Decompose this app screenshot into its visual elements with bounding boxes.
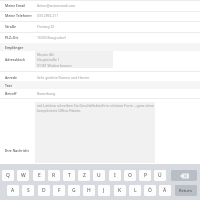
- staticText: Ä: [163, 187, 167, 194]
- button[interactable]: Ü: [154, 170, 166, 181]
- staticText: P: [144, 172, 147, 179]
- button[interactable]: I: [109, 170, 121, 181]
- staticText: E: [38, 172, 41, 179]
- button[interactable]: P: [139, 170, 151, 181]
- staticText: 16333 Bosgrudorf: [37, 35, 66, 40]
- staticText: R: [52, 172, 56, 179]
- staticText: Adressblock: [5, 57, 26, 62]
- button[interactable]: O: [124, 170, 136, 181]
- staticText: L: [134, 187, 137, 194]
- staticText: Meine Telefonnr: [5, 13, 32, 18]
- staticText: I: [114, 172, 116, 179]
- staticText: Anton@antonsmail.com: [37, 3, 76, 8]
- button[interactable]: Ö: [144, 185, 156, 196]
- button[interactable]: A: [7, 185, 19, 196]
- staticText: U: [97, 172, 101, 179]
- staticText: Freiweg 32: [37, 24, 55, 29]
- staticText: K: [118, 187, 122, 194]
- button[interactable]: E: [33, 170, 45, 181]
- button[interactable]: J: [98, 185, 110, 196]
- button[interactable]: S: [22, 185, 34, 196]
- staticText: T: [68, 172, 71, 179]
- button[interactable]: R: [48, 170, 60, 181]
- button[interactable]: [0, 54, 200, 71]
- staticText: H: [87, 187, 91, 194]
- staticText: 91181 Wolsterhausen: [37, 63, 72, 68]
- button[interactable]: Backspace: [171, 170, 197, 181]
- staticText: J: [103, 187, 105, 194]
- staticText: Text: [5, 83, 12, 88]
- staticText: Hauptstraße 1: [37, 57, 60, 62]
- button[interactable]: Z: [78, 170, 90, 181]
- staticText: mit Lattimo schreiben Sie Geschäftsbrief…: [37, 103, 154, 113]
- staticText: Ihre Nachricht: [5, 148, 29, 153]
- button[interactable]: [0, 99, 200, 163]
- staticText: W: [21, 172, 26, 179]
- staticText: Ö: [148, 187, 152, 194]
- staticText: 033 2992 211: [37, 13, 59, 18]
- staticText: S: [27, 187, 30, 194]
- button[interactable]: [0, 71, 200, 82]
- staticText: Muster AG: [37, 52, 54, 57]
- button[interactable]: [0, 1, 200, 11]
- staticText: Anrede: [5, 75, 17, 80]
- staticText: D: [42, 187, 46, 194]
- staticText: Q: [6, 172, 10, 179]
- button[interactable]: U: [93, 170, 105, 181]
- button[interactable]: T: [63, 170, 75, 181]
- staticText: Z: [83, 172, 86, 179]
- button[interactable]: [0, 21, 200, 32]
- button[interactable]: H: [83, 185, 95, 196]
- staticText: Empfänger: [5, 45, 24, 50]
- staticText: Sehr geehrte Damen und Herren: [37, 75, 90, 80]
- button[interactable]: D: [38, 185, 50, 196]
- staticText: A: [11, 187, 15, 194]
- staticText: F: [58, 187, 61, 194]
- button[interactable]: Return: [175, 185, 197, 196]
- staticText: PLZ+Ort: [5, 35, 19, 40]
- staticText: Straße: [5, 24, 16, 29]
- button[interactable]: [0, 90, 200, 100]
- staticText: Meine Email: [5, 3, 26, 8]
- button[interactable]: Q: [2, 170, 14, 181]
- button[interactable]: L: [129, 185, 141, 196]
- staticText: Return: [179, 188, 193, 193]
- button[interactable]: Ä: [159, 185, 171, 196]
- staticText: Ü: [158, 172, 162, 179]
- button[interactable]: W: [17, 170, 29, 181]
- button[interactable]: K: [114, 185, 126, 196]
- button[interactable]: [0, 32, 200, 43]
- staticText: Bewerbung: [37, 91, 56, 96]
- button[interactable]: [0, 11, 200, 22]
- staticText: G: [72, 187, 76, 194]
- button[interactable]: G: [68, 185, 80, 196]
- button[interactable]: F: [53, 185, 65, 196]
- staticText: Betreff: [5, 91, 17, 96]
- staticText: O: [128, 172, 132, 179]
